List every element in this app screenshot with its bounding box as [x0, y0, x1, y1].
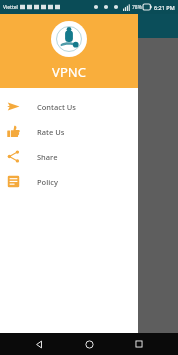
staticText: 6:21 PM: [154, 4, 175, 11]
staticText: Contact Us: [37, 102, 76, 112]
staticText: Viettel: [3, 4, 18, 11]
button[interactable]: Rate Us: [0, 119, 138, 144]
staticText: 6:21 PM: [154, 4, 175, 11]
staticText: Policy: [37, 177, 58, 187]
staticText: VPNC: [52, 63, 86, 81]
button[interactable]: Policy: [0, 169, 138, 194]
button[interactable]: Contact Us: [0, 94, 138, 119]
staticText: Viettel: [3, 4, 18, 11]
staticText: Rate Us: [37, 127, 65, 137]
button[interactable]: Home: [78, 333, 100, 355]
button[interactable]: Back: [28, 333, 50, 355]
button[interactable]: Share: [0, 144, 138, 169]
staticText: 78%: [132, 4, 142, 11]
button[interactable]: [120, 233, 164, 257]
staticText: Share: [37, 152, 58, 162]
button[interactable]: Recent apps: [128, 333, 150, 355]
staticText: 78%: [132, 4, 142, 11]
